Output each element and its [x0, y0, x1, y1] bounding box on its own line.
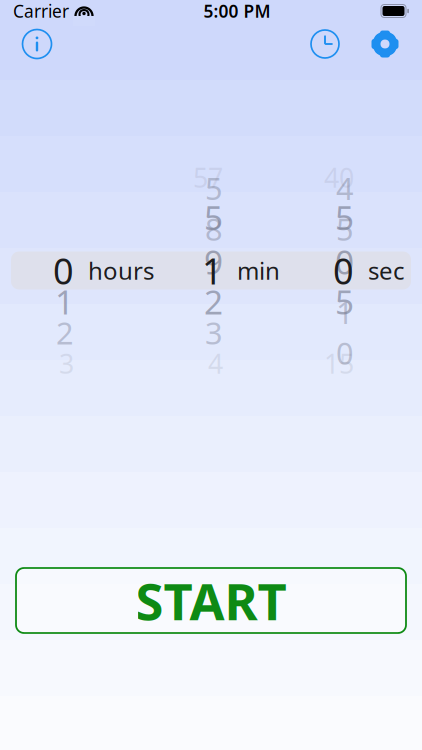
staticText: START: [135, 567, 286, 634]
staticText: 0: [53, 247, 74, 294]
button[interactable]: History: [303, 22, 347, 66]
staticText: min: [237, 255, 280, 286]
staticText: 3: [59, 346, 74, 381]
staticText: 5: [335, 279, 354, 324]
staticText: 4: [208, 346, 223, 381]
staticText: 10: [336, 292, 354, 373]
staticText: 45: [336, 168, 354, 249]
staticText: 0: [333, 247, 354, 294]
staticText: 1: [55, 279, 74, 324]
staticText: 57: [193, 160, 223, 195]
staticText: 3: [205, 312, 223, 353]
staticText: 50: [335, 195, 354, 284]
staticText: 40: [324, 160, 354, 195]
staticText: 58: [205, 168, 223, 249]
staticText: sec: [368, 255, 405, 286]
staticText: Carrier: [13, 0, 69, 22]
button[interactable]: START: [16, 568, 406, 633]
staticText: 2: [204, 279, 223, 324]
staticText: 59: [204, 195, 223, 284]
button[interactable]: Info: [15, 22, 59, 66]
button[interactable]: Settings: [363, 22, 407, 66]
staticText: 15: [324, 346, 354, 381]
staticText: 5:00 PM: [203, 0, 270, 22]
staticText: 1: [202, 247, 223, 294]
staticText: 2: [56, 312, 74, 353]
staticText: hours: [88, 255, 154, 286]
